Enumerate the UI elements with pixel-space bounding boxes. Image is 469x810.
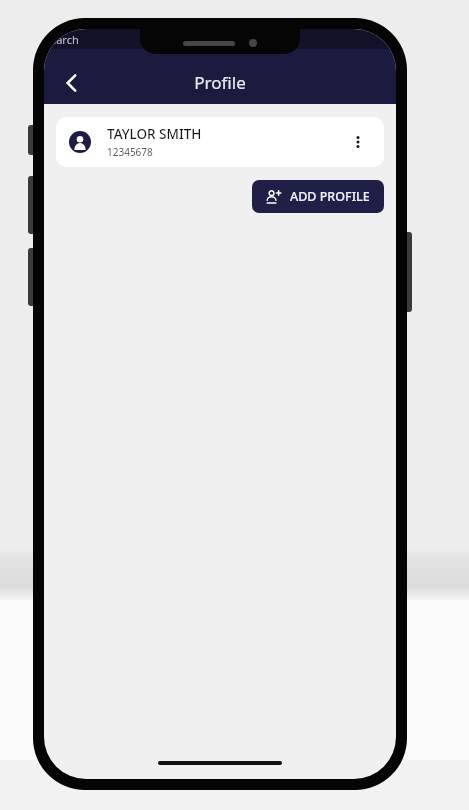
staticText: earch bbox=[50, 32, 79, 47]
staticText: ADD PROFILE bbox=[290, 188, 370, 205]
staticText: Profile bbox=[194, 71, 246, 94]
button[interactable]: Back bbox=[50, 61, 94, 105]
button[interactable]: More options bbox=[345, 129, 371, 155]
staticText: 12345678 bbox=[107, 145, 153, 159]
button[interactable]: TAYLOR SMITH bbox=[56, 117, 384, 167]
staticText: TAYLOR SMITH bbox=[107, 125, 202, 143]
button[interactable]: ADD PROFILE bbox=[252, 180, 384, 213]
